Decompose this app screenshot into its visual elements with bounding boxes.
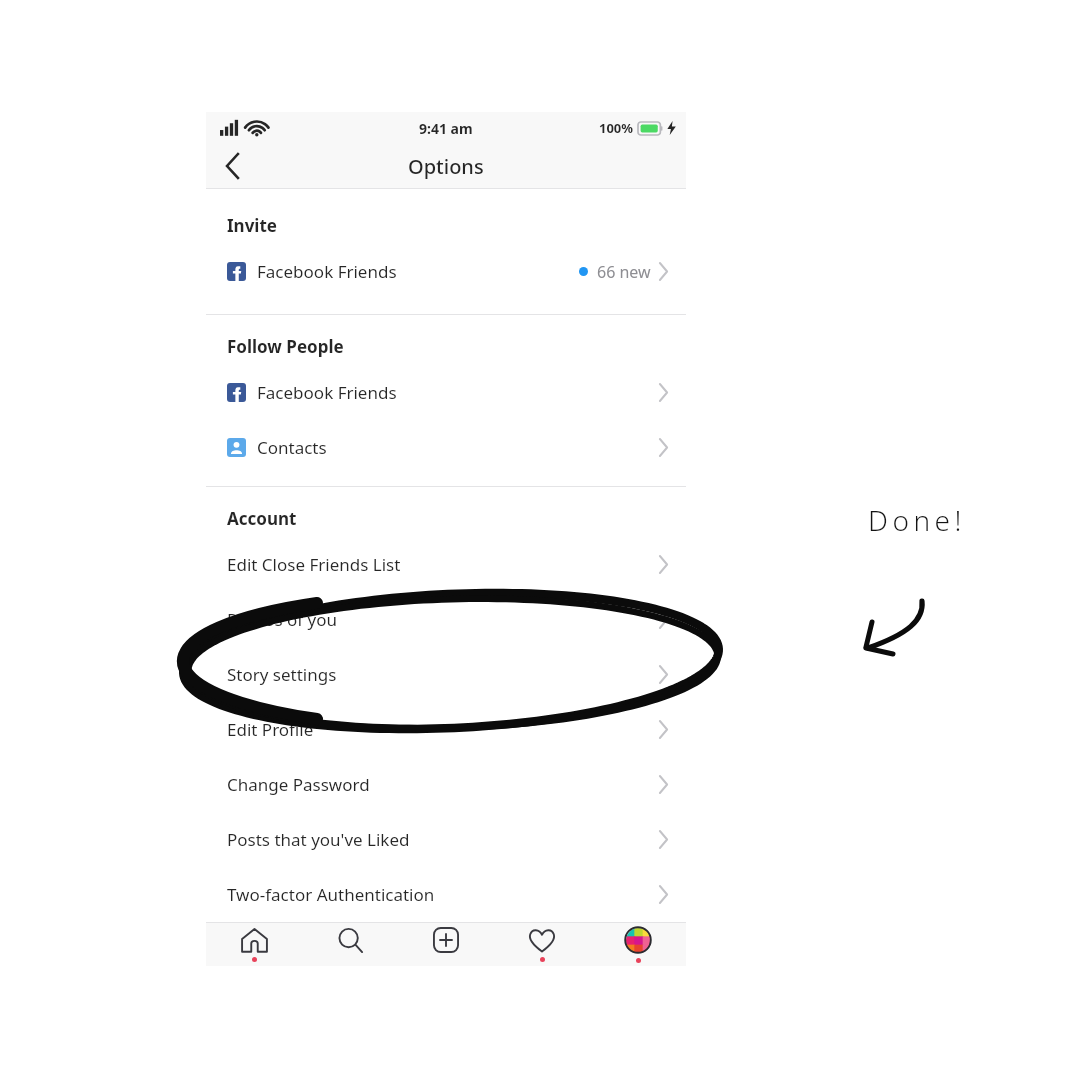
button[interactable]: Add post (398, 923, 494, 966)
button[interactable]: Edit Close Friends List (206, 537, 686, 592)
staticText: 9:41 am (419, 119, 473, 138)
staticText: Options (408, 153, 484, 180)
button[interactable]: Contacts (206, 420, 686, 475)
button[interactable]: Story settings (206, 647, 686, 702)
staticText: Change Password (227, 773, 370, 796)
button[interactable]: Two-factor Authentication (206, 867, 686, 922)
button[interactable]: Search (302, 923, 398, 966)
button[interactable]: Back (206, 144, 258, 188)
staticText: Account (227, 507, 297, 530)
staticText: Contacts (257, 436, 327, 459)
button[interactable]: Facebook Friends (206, 244, 686, 299)
button[interactable]: Change Password (206, 757, 686, 812)
staticText: 66 new (597, 261, 651, 283)
staticText: Photos of you (227, 608, 338, 631)
staticText: Follow People (227, 335, 344, 358)
button[interactable]: Profile (590, 923, 686, 966)
button[interactable]: Home (206, 923, 302, 966)
staticText: Done! (868, 501, 966, 539)
button[interactable]: Photos of you (206, 592, 686, 647)
staticText: Facebook Friends (257, 381, 397, 404)
button[interactable]: Edit Profile (206, 702, 686, 757)
button[interactable]: Posts that you've Liked (206, 812, 686, 867)
staticText: Edit Profile (227, 718, 314, 741)
staticText: Posts that you've Liked (227, 828, 410, 851)
staticText: Story settings (227, 663, 337, 686)
staticText: Invite (227, 214, 277, 237)
button[interactable]: Activity (494, 923, 590, 966)
staticText: 100% (599, 119, 634, 137)
staticText: Two-factor Authentication (227, 883, 435, 906)
staticText: Facebook Friends (257, 260, 397, 283)
staticText: Edit Close Friends List (227, 553, 401, 576)
button[interactable]: Facebook Friends (206, 365, 686, 420)
